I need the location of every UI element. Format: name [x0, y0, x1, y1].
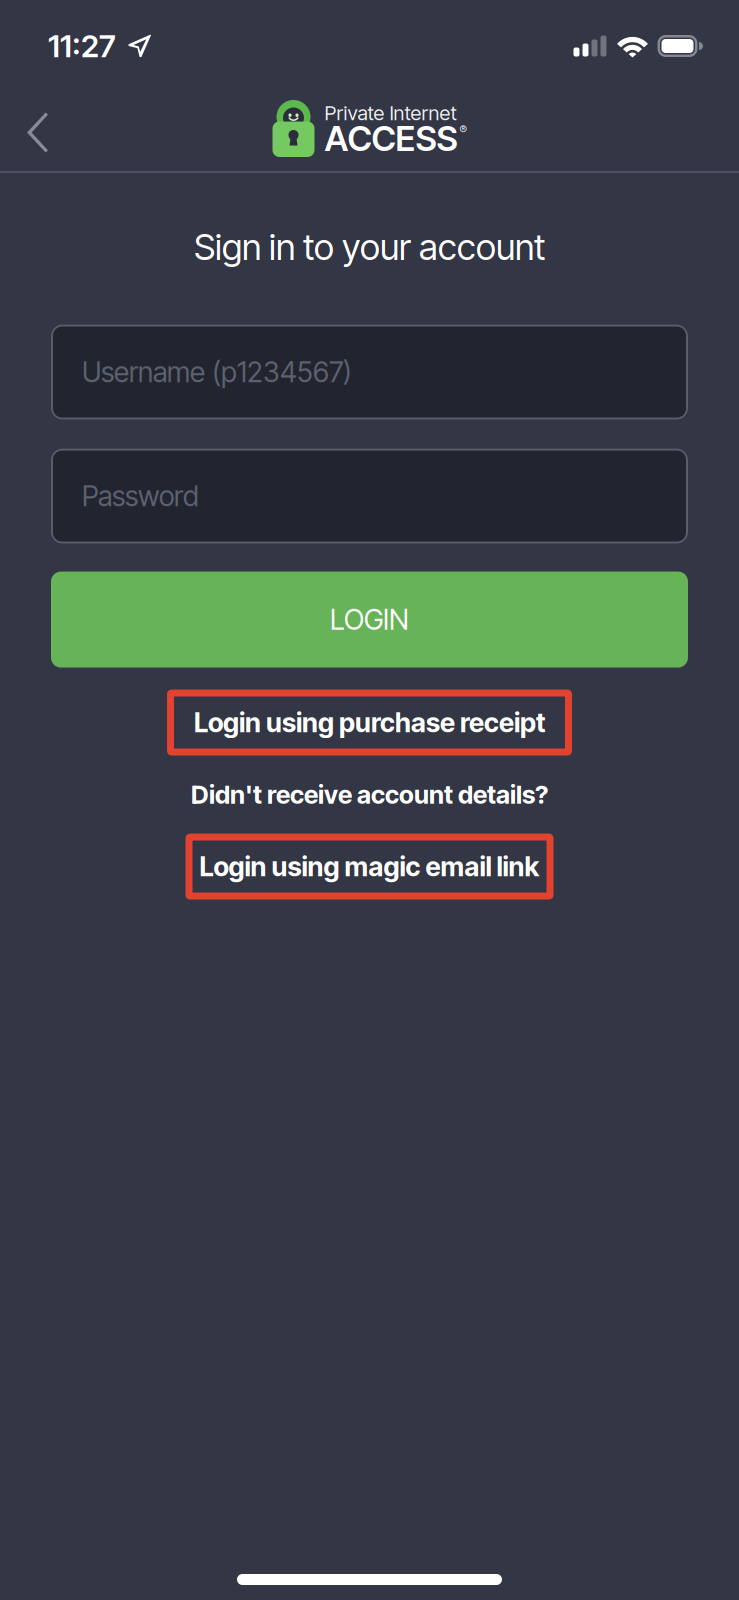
button[interactable]: Back	[0, 92, 75, 172]
button[interactable]: Didn't receive account details?	[191, 768, 548, 822]
staticText: Password	[82, 479, 199, 513]
button[interactable]: Login using purchase receipt	[167, 690, 572, 756]
staticText: Private Internet	[324, 101, 456, 125]
staticText: Sign in to your account	[194, 225, 545, 269]
button[interactable]: Login using magic email link	[185, 834, 553, 900]
staticText: 11:27	[48, 27, 116, 64]
staticText: Login using magic email link	[199, 850, 539, 883]
button[interactable]: LOGIN	[51, 572, 688, 668]
staticText: Login using purchase receipt	[194, 706, 545, 739]
staticText: ®	[459, 123, 466, 137]
staticText: ACCESS	[324, 117, 457, 159]
staticText: Username (p1234567)	[82, 355, 352, 389]
staticText: LOGIN	[330, 603, 409, 636]
staticText: Didn't receive account details?	[191, 779, 548, 810]
